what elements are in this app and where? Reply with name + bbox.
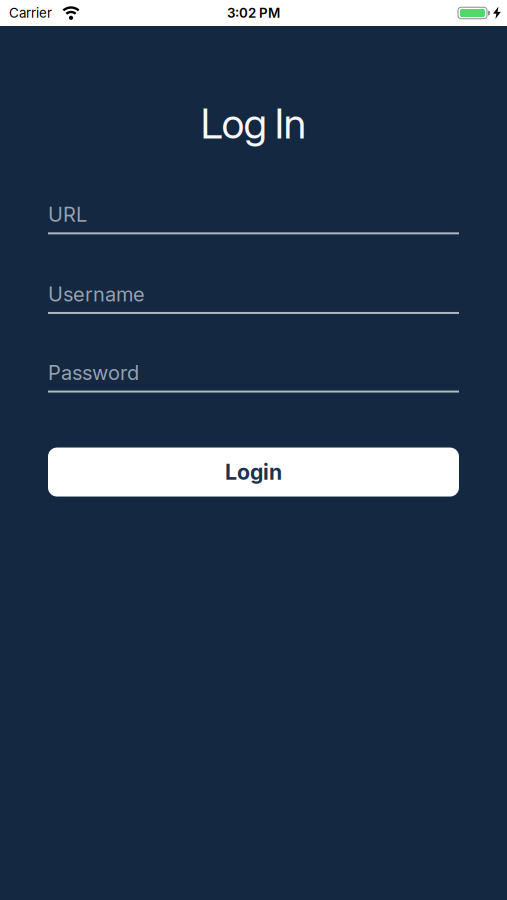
button[interactable]: Password: [48, 361, 459, 393]
staticText: Username: [48, 282, 145, 306]
staticText: URL: [48, 203, 87, 226]
button[interactable]: URL: [48, 203, 459, 234]
button[interactable]: Username: [48, 282, 459, 314]
staticText: Log In: [200, 99, 306, 148]
button[interactable]: Login: [48, 447, 459, 496]
staticText: Password: [48, 361, 139, 385]
staticText: Login: [225, 459, 282, 485]
staticText: 3:02 PM: [227, 5, 280, 21]
staticText: Carrier: [9, 5, 52, 21]
